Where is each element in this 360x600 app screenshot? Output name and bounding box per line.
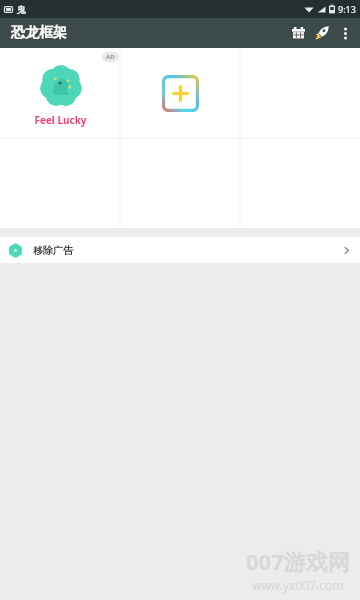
staticText: 鬼 <box>17 4 26 15</box>
staticText: 恐龙框架 <box>11 24 67 42</box>
button[interactable]: 移除广告 <box>0 237 360 263</box>
staticText: 007游戏网 <box>246 546 350 576</box>
staticText: 9:13 <box>338 3 356 15</box>
staticText: Feel Lucky <box>34 113 87 127</box>
button[interactable]: Feel Lucky <box>0 48 120 138</box>
staticText: AD <box>106 53 115 61</box>
button[interactable]: Boost <box>310 21 334 45</box>
staticText: www.yx007.com <box>252 577 344 593</box>
staticText: 移除广告 <box>33 244 73 257</box>
button[interactable]: Add app <box>120 48 240 138</box>
button[interactable]: More options <box>334 22 356 44</box>
button[interactable]: Gift box <box>286 21 310 45</box>
